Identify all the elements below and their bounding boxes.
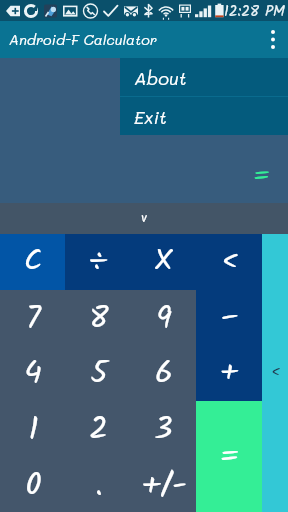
button[interactable]: About [120,58,288,96]
button[interactable]: – [196,290,262,345]
staticText: C [24,238,42,286]
staticText: 5 [90,349,108,400]
staticText: Exit [134,105,167,128]
button[interactable]: 1 [0,400,66,456]
button[interactable]: . [66,456,131,512]
button[interactable]: Collapse display [0,203,288,234]
staticText: +/- [141,461,187,512]
button[interactable]: 2 [66,400,131,456]
button[interactable]: ÷ [65,234,130,290]
staticText: 6 [155,349,173,400]
staticText: < [271,360,280,386]
staticText: – [220,294,239,342]
button[interactable]: +/- [131,456,196,512]
staticText: Android-F Calculator [9,30,157,49]
staticText: . [95,461,103,512]
staticText: 8 [89,294,109,345]
staticText: 12:28 PM [224,0,285,21]
button[interactable]: < [196,234,262,290]
button[interactable]: + [196,345,262,401]
button[interactable]: 7 [0,290,66,345]
button[interactable]: 3 [131,400,196,456]
staticText: 1 [28,405,39,456]
staticText: 7 [26,294,41,345]
staticText: ÷ [89,238,107,286]
staticText: About [134,66,187,89]
button[interactable]: 0 [0,456,66,512]
button[interactable]: Expand panel [262,234,288,512]
staticText: + [220,349,238,397]
staticText: 2 [89,405,108,456]
staticText: = [220,433,239,481]
button[interactable]: 4 [0,345,66,400]
staticText: 0 [25,461,42,512]
button[interactable]: More options [258,21,288,58]
button[interactable]: 5 [66,345,131,400]
staticText: v [141,208,147,229]
staticText: = [253,156,270,197]
staticText: 4 [24,349,42,400]
staticText: X [154,238,173,286]
button[interactable]: Exit [120,97,288,135]
button[interactable]: X [130,234,196,290]
button[interactable]: = [196,401,262,512]
staticText: 9 [156,294,172,345]
button[interactable]: C [0,234,65,290]
staticText: 3 [154,405,173,456]
button[interactable]: 9 [131,290,196,345]
staticText: < [221,238,238,286]
button[interactable]: 6 [131,345,196,400]
button[interactable]: 8 [66,290,131,345]
